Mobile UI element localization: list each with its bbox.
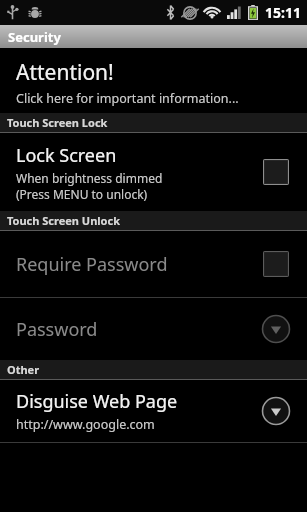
staticText: Password <box>16 317 261 342</box>
staticText: Require Password <box>16 252 263 277</box>
staticText: Click here for important information... <box>16 90 239 107</box>
button[interactable]: Toggle checkbox <box>263 159 289 185</box>
button[interactable]: Lock Screen <box>0 133 307 211</box>
button[interactable]: Toggle checkbox <box>263 251 289 277</box>
staticText: 15:11 <box>265 3 301 22</box>
staticText: Security <box>8 28 61 46</box>
button[interactable]: Attention! <box>0 48 307 113</box>
staticText: Lock Screen <box>16 143 117 168</box>
button[interactable]: Password <box>0 298 307 360</box>
staticText: When brightness dimmed <box>16 170 163 186</box>
staticText: Touch Screen Lock <box>7 115 108 130</box>
staticText: http://www.google.com <box>16 416 155 433</box>
button[interactable]: Open options <box>261 314 291 344</box>
staticText: (Press MENU to unlock) <box>16 186 148 202</box>
staticText: Other <box>7 362 40 377</box>
staticText: Touch Screen Unlock <box>7 213 120 228</box>
button[interactable]: Require Password <box>0 231 307 297</box>
staticText: Disguise Web Page <box>16 389 178 414</box>
staticText: Attention! <box>16 58 114 87</box>
button[interactable]: Open options <box>261 396 291 426</box>
button[interactable]: Disguise Web Page <box>0 380 307 442</box>
